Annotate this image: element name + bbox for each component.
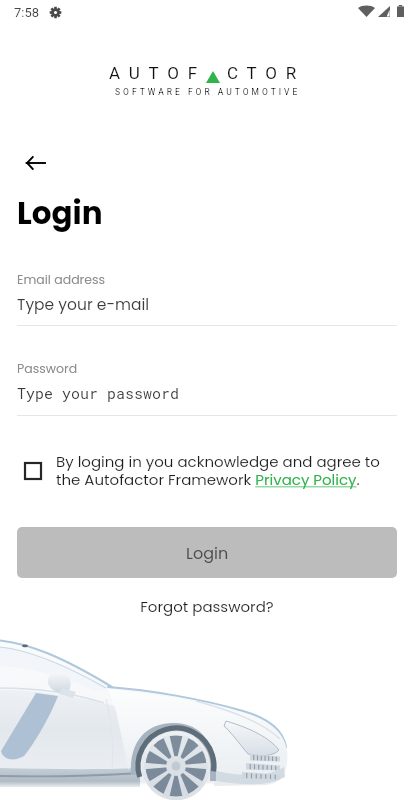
staticText: CTOR: [227, 63, 306, 83]
staticText: Password: [17, 360, 78, 377]
staticText: By loging in you acknowledge and agree t…: [56, 451, 386, 491]
staticText: Login: [186, 542, 229, 564]
button[interactable]: Login: [17, 527, 397, 578]
button[interactable]: Accept terms and conditions: [24, 462, 42, 480]
staticText: Email address: [17, 271, 106, 288]
button[interactable]: Back: [20, 150, 52, 176]
button[interactable]: Type your e-mail: [17, 294, 397, 316]
button[interactable]: Forgot password?: [0, 596, 414, 617]
staticText: AUTOF: [109, 63, 206, 83]
staticText: Login: [17, 191, 103, 234]
button[interactable]: Type your password: [17, 383, 397, 403]
staticText: 7:58: [14, 5, 40, 20]
staticText: SOFTWARE FOR AUTOMOTIVE: [115, 87, 301, 97]
